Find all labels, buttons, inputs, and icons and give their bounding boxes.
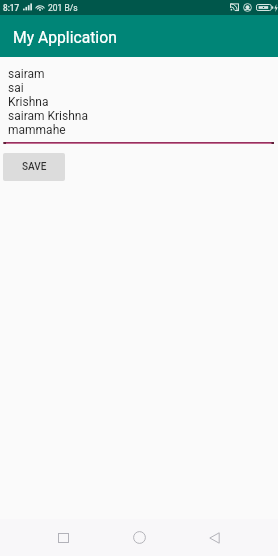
button[interactable]: Recent apps (45, 519, 81, 556)
button[interactable]: sairam sai Krishna sairam Krishna mammah… (0, 57, 278, 145)
staticText: 8:17 (3, 3, 20, 13)
button[interactable]: Home (121, 519, 157, 556)
staticText: SAVE (22, 161, 47, 173)
button[interactable]: SAVE (3, 153, 65, 181)
staticText: sairam sai Krishna sairam Krishna mammah… (8, 67, 88, 137)
button[interactable]: Back (196, 519, 232, 556)
staticText: 201 B/s (48, 3, 78, 13)
staticText: My Application (13, 28, 117, 46)
